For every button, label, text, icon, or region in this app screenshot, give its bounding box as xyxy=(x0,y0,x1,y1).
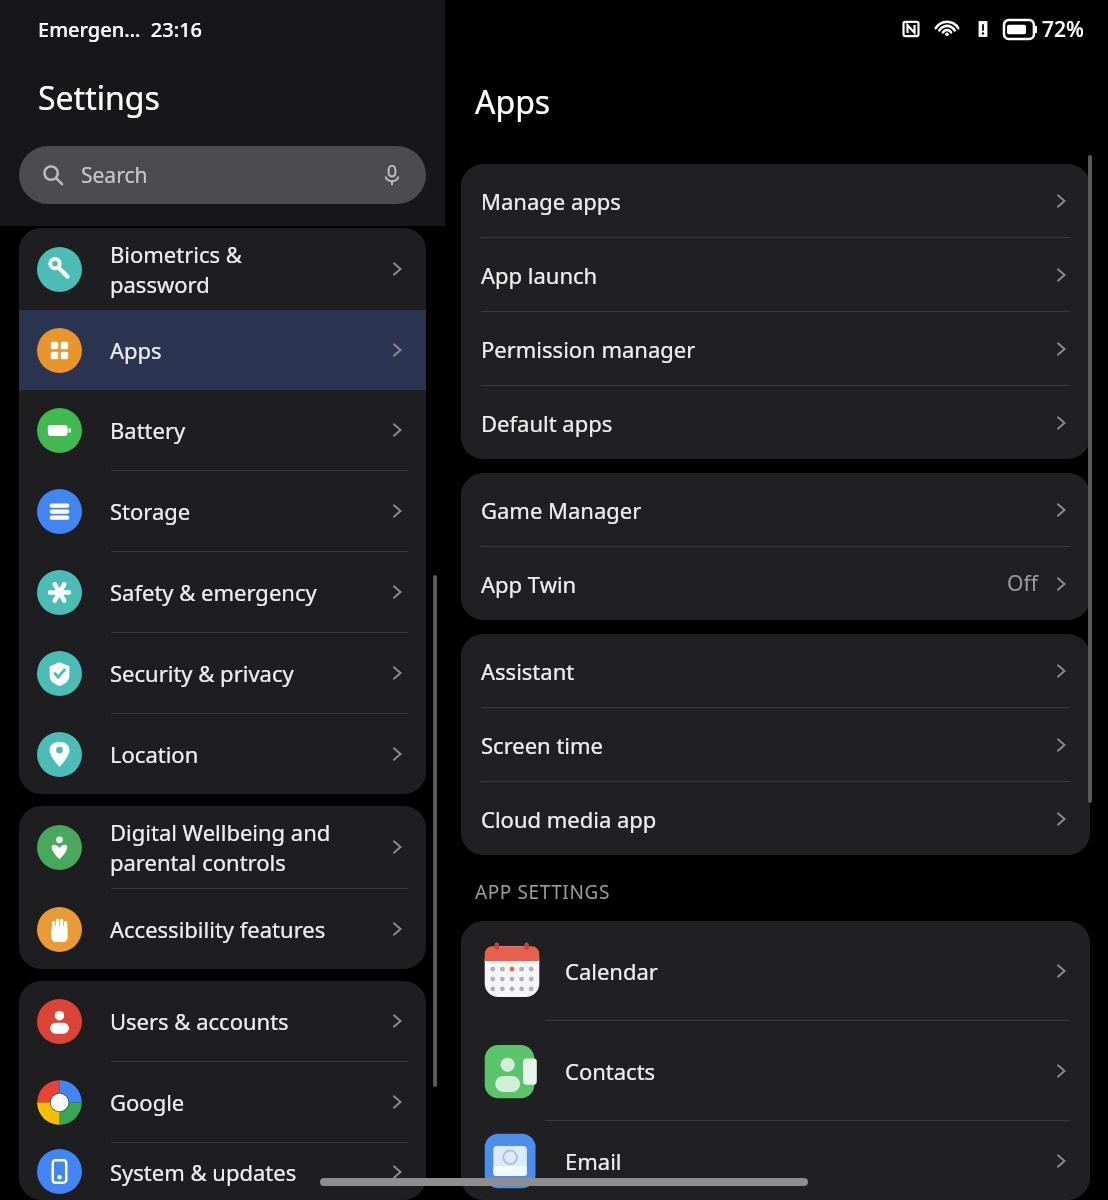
button[interactable]: Permission manager xyxy=(461,312,1090,385)
button[interactable]: Location xyxy=(19,714,426,794)
staticText: Email xyxy=(565,1146,1050,1176)
staticText: Calendar xyxy=(565,956,1050,986)
staticText: Permission manager xyxy=(481,334,1050,364)
button[interactable]: Battery xyxy=(19,390,426,470)
button[interactable]: Accessibility features xyxy=(19,889,426,969)
staticText: Cloud media app xyxy=(481,804,1050,834)
button[interactable]: Security & privacy xyxy=(19,633,426,713)
button[interactable]: Storage xyxy=(19,471,426,551)
staticText: App launch xyxy=(481,260,1050,290)
staticText: Accessibility features xyxy=(110,914,386,944)
staticText: Google xyxy=(110,1087,386,1117)
button[interactable]: Biometrics & password xyxy=(19,228,426,310)
button[interactable]: Search xyxy=(19,146,426,204)
button[interactable]: System & updates xyxy=(19,1143,426,1200)
button[interactable]: App launch xyxy=(461,238,1090,311)
staticText: Contacts xyxy=(565,1056,1050,1086)
button[interactable]: Safety & emergency xyxy=(19,552,426,632)
staticText: Search xyxy=(81,161,148,190)
button[interactable]: Apps xyxy=(19,310,426,390)
staticText: Digital Wellbeing and parental controls xyxy=(110,817,386,877)
staticText: Assistant xyxy=(481,656,1050,686)
staticText: Settings xyxy=(38,76,160,120)
button[interactable]: Google xyxy=(19,1062,426,1142)
staticText: Users & accounts xyxy=(110,1006,386,1036)
button[interactable]: Manage apps xyxy=(461,164,1090,237)
staticText: Security & privacy xyxy=(110,658,386,688)
staticText: Manage apps xyxy=(481,186,1050,216)
staticText: Emergen… 23:16 xyxy=(38,16,203,43)
button[interactable]: App Twin xyxy=(461,547,1090,620)
button[interactable]: Calendar xyxy=(461,921,1090,1020)
button[interactable]: Digital Wellbeing and parental controls xyxy=(19,806,426,888)
staticText: 72% xyxy=(1042,15,1084,44)
staticText: Safety & emergency xyxy=(110,577,386,607)
button[interactable]: Default apps xyxy=(461,386,1090,459)
button[interactable]: Screen time xyxy=(461,708,1090,781)
staticText: Apps xyxy=(475,80,551,124)
staticText: Game Manager xyxy=(481,495,1050,525)
button[interactable]: Contacts xyxy=(461,1021,1090,1120)
staticText: Location xyxy=(110,739,386,769)
staticText: Biometrics & password xyxy=(110,239,386,299)
staticText: APP SETTINGS xyxy=(475,879,610,905)
button[interactable]: Email xyxy=(461,1121,1090,1200)
button[interactable]: Assistant xyxy=(461,634,1090,707)
staticText: Screen time xyxy=(481,730,1050,760)
other: Voice search xyxy=(380,163,404,187)
staticText: Default apps xyxy=(481,408,1050,438)
staticText: Storage xyxy=(110,496,386,526)
staticText: Battery xyxy=(110,415,386,445)
staticText: App Twin xyxy=(481,569,1007,599)
staticText: Off xyxy=(1007,569,1038,598)
button[interactable]: Game Manager xyxy=(461,473,1090,546)
button[interactable]: Cloud media app xyxy=(461,782,1090,855)
staticText: System & updates xyxy=(110,1157,386,1187)
staticText: Apps xyxy=(110,335,386,365)
button[interactable]: Users & accounts xyxy=(19,981,426,1061)
